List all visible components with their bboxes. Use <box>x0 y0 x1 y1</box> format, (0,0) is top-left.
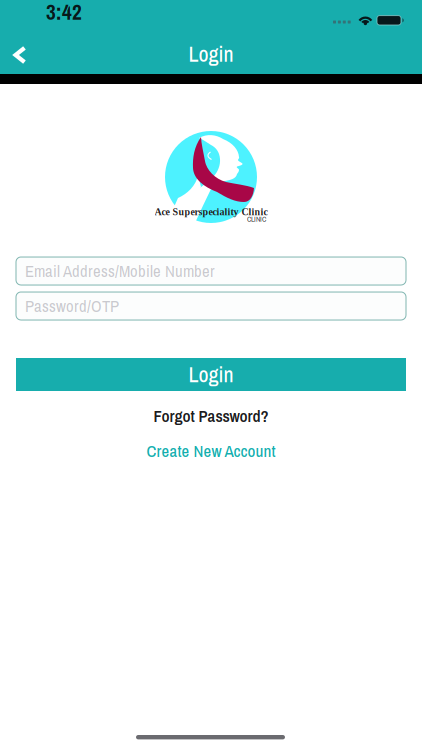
button[interactable]: Back <box>0 35 40 75</box>
staticText: Create New Account <box>146 440 275 462</box>
button[interactable]: Create New Account <box>131 440 291 462</box>
staticText: Password/OTP <box>25 295 119 317</box>
staticText: Forgot Password? <box>153 405 268 427</box>
staticText: CLINIC <box>247 214 266 224</box>
staticText: Email Address/Mobile Number <box>25 260 215 282</box>
button[interactable]: Login <box>16 358 406 391</box>
button[interactable]: Forgot Password? <box>141 405 281 427</box>
staticText: Ace Superspeciality Clinic <box>154 206 267 218</box>
staticText: Login <box>188 360 233 389</box>
staticText: 3:42 <box>46 0 82 26</box>
staticText: Login <box>188 40 233 68</box>
